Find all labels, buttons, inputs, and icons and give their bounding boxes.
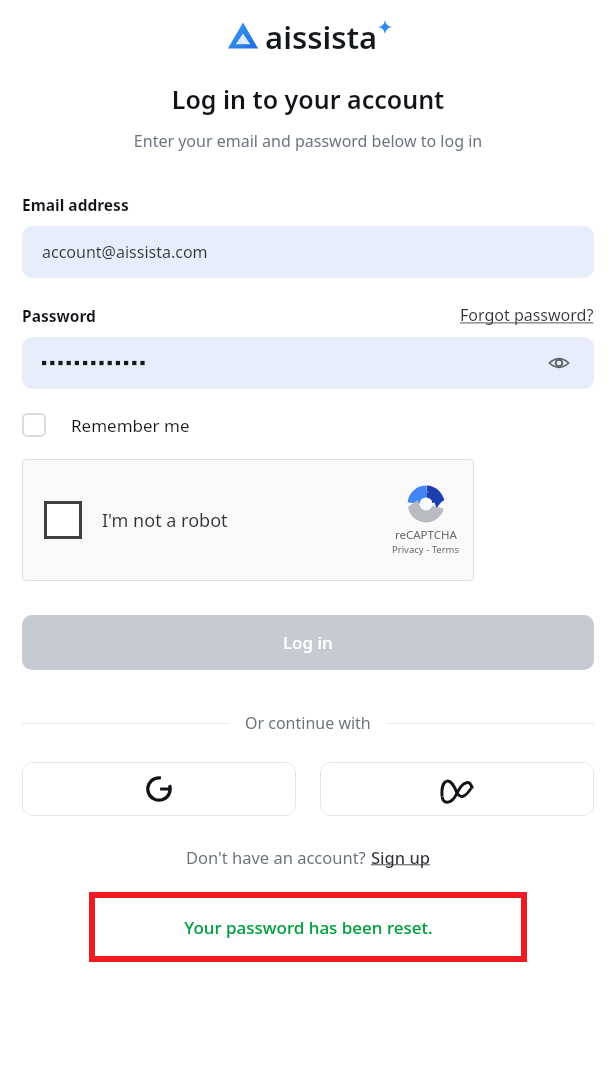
staticText: Email address [22,194,129,215]
staticText: Your password has been reset. [184,916,433,939]
button[interactable]: Show password [544,348,574,378]
staticText: Don't have an account? [186,846,371,868]
staticText: Or continue with [245,712,371,734]
staticText: reCAPTCHA [395,527,457,543]
staticText: Forgot password? [460,304,594,326]
button[interactable]: Continue with Google [22,762,296,816]
button[interactable]: Continue with Meta [320,762,594,816]
staticText: Password [22,305,96,326]
staticText: Enter your email and password below to l… [0,130,616,152]
staticText: I'm not a robot [102,508,228,533]
button[interactable]: Remember me [22,413,190,437]
staticText: Remember me [71,414,190,437]
button[interactable]: I'm not a robot [22,459,474,581]
button[interactable]: Sign up [371,846,430,868]
staticText: Log in [283,631,333,654]
staticText: Privacy - Terms [392,543,460,556]
staticText: Sign up [371,846,430,868]
button[interactable]: Log in [22,615,594,670]
button[interactable]: account@aissista.com [22,226,594,278]
staticText: Log in to your account [0,82,616,116]
staticText: aissista [265,16,378,58]
staticText: account@aissista.com [42,241,208,263]
button[interactable]: Show password [22,337,594,389]
button[interactable]: Forgot password? [460,304,594,326]
